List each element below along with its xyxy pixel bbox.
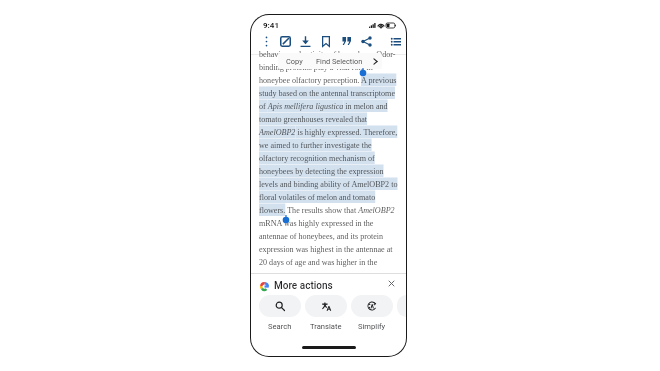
button[interactable]: Open in new: [277, 33, 293, 49]
button[interactable]: Menu: [388, 33, 404, 49]
button[interactable]: More: [369, 53, 382, 69]
button[interactable]: Bookmark: [318, 33, 334, 49]
staticText: Simplify: [358, 322, 386, 331]
button[interactable]: Download: [297, 33, 313, 49]
staticText: Find Selection: [316, 57, 363, 66]
staticText: 9:41: [263, 21, 280, 30]
button[interactable]: Close: [385, 277, 397, 289]
button[interactable]: Share: [358, 33, 374, 49]
staticText: Copy: [286, 57, 303, 66]
button[interactable]: Find Selection: [312, 53, 366, 69]
staticText: Translate: [310, 322, 342, 331]
button[interactable]: Translate: [305, 295, 347, 331]
button[interactable]: Cite: [338, 33, 354, 49]
staticText: More actions: [274, 280, 333, 292]
button[interactable]: More actions: [397, 295, 407, 317]
button[interactable]: Search: [259, 295, 301, 331]
button[interactable]: More options: [258, 33, 274, 49]
button[interactable]: Simplify: [351, 295, 393, 331]
staticText: Search: [268, 322, 292, 331]
button[interactable]: Copy: [278, 53, 310, 69]
staticText: behavior and activity of honeybees. Odor…: [259, 50, 400, 267]
